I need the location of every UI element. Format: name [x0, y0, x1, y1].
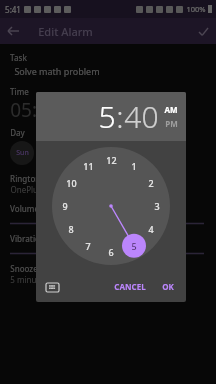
staticText: Time: [10, 86, 29, 97]
staticText: OK: [162, 281, 174, 292]
button[interactable]: 5: [126, 238, 142, 254]
button[interactable]: 7: [80, 238, 96, 254]
staticText: 5 minutes: [10, 274, 48, 285]
staticText: 12: [106, 154, 117, 166]
staticText: Volume: [10, 203, 39, 214]
staticText: PM: [165, 118, 178, 129]
button[interactable]: 1: [126, 158, 142, 174]
button[interactable]: 6: [103, 244, 119, 260]
staticText: 6: [108, 246, 114, 258]
staticText: 40: [124, 96, 159, 137]
button[interactable]: 2: [143, 175, 159, 191]
button[interactable]: 8: [63, 221, 79, 237]
staticText: 10: [66, 177, 77, 189]
button[interactable]: 10: [63, 175, 79, 191]
staticText: Snooze: [10, 263, 38, 274]
button[interactable]: 9: [57, 198, 73, 214]
button[interactable]: Back: [0, 18, 26, 44]
button[interactable]: CANCEL: [110, 278, 150, 295]
staticText: Sun: [16, 148, 29, 158]
button[interactable]: 12: [103, 152, 119, 168]
staticText: 5: [131, 240, 137, 252]
button[interactable]: 3: [149, 198, 165, 214]
staticText: AM: [164, 104, 178, 115]
staticText: 9: [62, 200, 68, 212]
button[interactable]: 40: [124, 96, 159, 137]
staticText: 5: [98, 96, 116, 137]
staticText: 4: [148, 223, 154, 235]
button[interactable]: Sun: [10, 141, 34, 165]
staticText: Day: [10, 127, 25, 138]
staticText: CANCEL: [114, 281, 146, 292]
staticText: 8: [68, 223, 74, 235]
staticText: 3: [154, 200, 160, 212]
staticText: 1: [131, 160, 137, 172]
button[interactable]: OK: [158, 278, 178, 295]
button[interactable]: 11: [80, 158, 96, 174]
staticText: 2: [148, 177, 154, 189]
button[interactable]: 5: [98, 96, 116, 137]
staticText: Solve math problem: [14, 65, 100, 77]
staticText: 11: [83, 160, 94, 172]
staticText: OnePlus Tick Tock: [10, 184, 78, 195]
staticText: Vibration: [10, 233, 45, 244]
staticText: Task: [10, 52, 27, 63]
staticText: 05:40: [10, 97, 59, 123]
button[interactable]: 4: [143, 221, 159, 237]
staticText: 7: [85, 240, 91, 252]
button[interactable]: Switch to keyboard input: [42, 277, 62, 297]
button[interactable]: PM: [165, 118, 178, 129]
button[interactable]: Save: [190, 18, 216, 44]
staticText: Edit Alarm: [38, 24, 93, 39]
staticText: 5:41: [5, 4, 21, 15]
staticText: :: [116, 96, 124, 137]
staticText: Ringtone: [10, 173, 45, 184]
staticText: 100%: [186, 4, 206, 14]
button[interactable]: AM: [164, 104, 178, 115]
